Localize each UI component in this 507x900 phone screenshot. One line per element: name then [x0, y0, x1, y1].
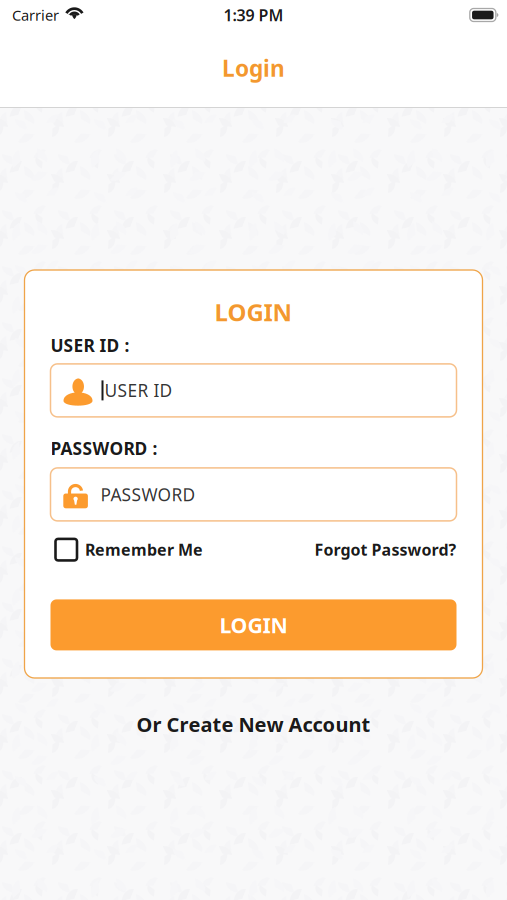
button[interactable]: PASSWORD — [50, 468, 456, 521]
staticText: Remember Me — [85, 539, 203, 560]
staticText: 1:39 PM — [223, 4, 283, 26]
button[interactable]: LOGIN — [50, 599, 456, 650]
button[interactable]: Remember Me — [50, 539, 203, 560]
button[interactable]: USER ID — [50, 364, 456, 417]
button[interactable]: Or Create New Account — [136, 711, 370, 738]
staticText: Or Create New Account — [136, 711, 370, 738]
staticText: LOGIN — [219, 611, 287, 639]
staticText: USER ID — [104, 379, 172, 402]
staticText: PASSWORD : — [50, 437, 157, 460]
button[interactable]: Forgot Password? — [314, 539, 456, 560]
staticText: Carrier — [12, 5, 59, 25]
staticText: LOGIN — [214, 296, 292, 328]
staticText: Forgot Password? — [314, 539, 456, 560]
staticText: PASSWORD — [100, 483, 195, 506]
staticText: USER ID : — [50, 334, 129, 357]
staticText: Login — [222, 53, 285, 83]
